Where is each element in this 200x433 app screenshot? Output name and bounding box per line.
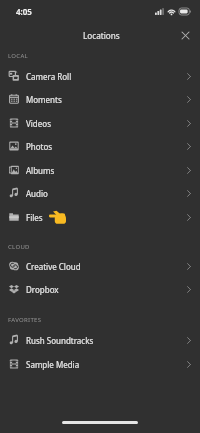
staticText: Albums — [26, 165, 55, 176]
button[interactable]: Rush Soundtracks — [0, 328, 200, 352]
staticText: Camera Roll — [26, 71, 72, 82]
staticText: Audio — [26, 188, 48, 199]
staticText: Moments — [26, 94, 62, 105]
staticText: Videos — [26, 118, 51, 129]
staticText: 4:05 — [16, 6, 32, 17]
staticText: Locations — [83, 30, 120, 41]
button[interactable]: Files — [0, 205, 200, 229]
button[interactable]: Albums — [0, 158, 200, 182]
staticText: Photos — [26, 141, 53, 152]
button[interactable]: Close — [175, 25, 195, 45]
staticText: Sample Media — [26, 359, 80, 370]
button[interactable]: Camera Roll — [0, 64, 200, 88]
button[interactable]: Sample Media — [0, 352, 200, 376]
button[interactable]: Videos — [0, 111, 200, 135]
staticText: Dropbox — [26, 284, 59, 295]
staticText: Creative Cloud — [26, 261, 81, 272]
button[interactable]: Dropbox — [0, 277, 200, 301]
staticText: CLOUD — [8, 243, 30, 251]
button[interactable]: Moments — [0, 87, 200, 111]
staticText: LOCAL — [8, 52, 28, 60]
button[interactable]: Creative Cloud — [0, 254, 200, 278]
button[interactable]: Photos — [0, 134, 200, 158]
staticText: FAVORITES — [8, 316, 42, 324]
button[interactable]: Audio — [0, 181, 200, 205]
staticText: Rush Soundtracks — [26, 335, 94, 346]
staticText: Files — [26, 212, 43, 223]
